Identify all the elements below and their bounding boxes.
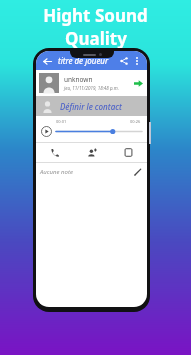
button[interactable]: Définir le contact	[36, 96, 147, 116]
staticText: unknown	[64, 75, 93, 84]
staticText: 00:01	[56, 119, 67, 124]
staticText: Quality	[65, 27, 127, 50]
button[interactable]: Forward	[132, 77, 144, 89]
button[interactable]: unknown	[36, 70, 147, 96]
button[interactable]: Message	[110, 143, 147, 162]
button[interactable]: Call	[36, 143, 73, 162]
button[interactable]: Edit note	[132, 166, 143, 177]
button[interactable]: Seek	[56, 127, 142, 136]
staticText: jeu, 11/11/2019, 18:48 p.m.	[64, 85, 119, 91]
button[interactable]: Add contact	[73, 143, 110, 162]
staticText: Aucune note	[40, 168, 132, 176]
staticText: Définir le contact	[60, 101, 122, 112]
button[interactable]: Share	[117, 54, 131, 68]
button[interactable]: Aucune note	[36, 163, 147, 180]
staticText: Hight Sound	[43, 4, 148, 27]
staticText: 00:26	[130, 119, 141, 124]
staticText: titre de joueur	[58, 55, 117, 66]
button[interactable]: More options	[131, 55, 143, 67]
button[interactable]: Back	[40, 54, 54, 68]
button[interactable]: Play	[40, 125, 53, 138]
